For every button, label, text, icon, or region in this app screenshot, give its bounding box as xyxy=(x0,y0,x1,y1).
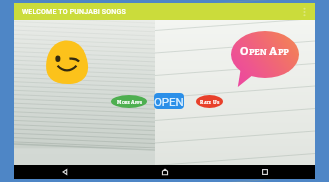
staticText: A xyxy=(267,44,278,58)
button[interactable]: Home xyxy=(115,165,215,179)
staticText: A xyxy=(130,99,135,105)
button[interactable]: M xyxy=(111,95,147,108)
staticText: ORE xyxy=(122,100,130,105)
staticText: O xyxy=(240,44,249,58)
button[interactable]: R xyxy=(196,95,223,108)
button[interactable]: Recent apps xyxy=(215,165,315,179)
staticText: PEN xyxy=(249,47,267,58)
staticText: PPS xyxy=(135,100,142,105)
staticText: WELCOME TO PUNJABI SONGS xyxy=(22,8,126,16)
button[interactable]: Back xyxy=(14,165,115,179)
staticText: U xyxy=(212,99,217,105)
staticText: R xyxy=(200,99,204,105)
button[interactable]: WELCOME TO PUNJABI SONGS xyxy=(14,3,315,20)
staticText: ATE xyxy=(204,100,212,105)
staticText: S xyxy=(217,100,220,105)
staticText: M xyxy=(117,99,122,105)
button[interactable]: More options xyxy=(298,6,310,18)
staticText: PP xyxy=(278,47,289,58)
staticText: OPEN xyxy=(154,95,184,108)
button[interactable]: OPEN xyxy=(154,93,184,109)
button[interactable]: Open App xyxy=(231,31,299,87)
